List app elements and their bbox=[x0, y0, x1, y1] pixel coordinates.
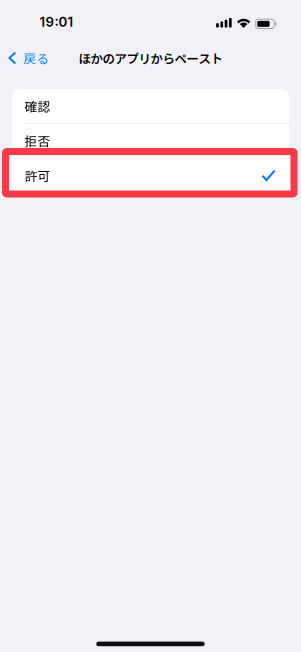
staticText: 19:01 bbox=[39, 14, 73, 30]
staticText: ほかのアプリからペースト bbox=[78, 49, 222, 67]
button[interactable]: 確認 bbox=[12, 89, 289, 123]
button[interactable]: 許可 bbox=[12, 158, 289, 192]
button[interactable]: 戻る bbox=[0, 45, 55, 71]
staticText: 拒否 bbox=[24, 131, 50, 150]
button[interactable]: 拒否 bbox=[12, 124, 289, 158]
staticText: 確認 bbox=[24, 97, 50, 115]
staticText: 戻る bbox=[23, 49, 49, 67]
staticText: 許可 bbox=[24, 166, 50, 184]
